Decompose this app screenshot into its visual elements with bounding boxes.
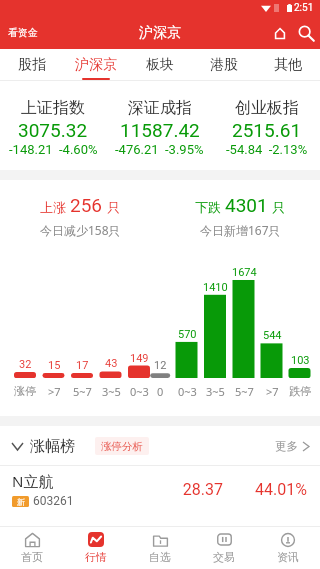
staticText: 1410 — [203, 281, 228, 294]
staticText: -476.21 -3.95% — [115, 142, 204, 157]
staticText: 今日减少158只 — [40, 222, 121, 238]
staticText: N立航 — [12, 471, 54, 491]
staticText: -54.84 -2.13% — [226, 142, 308, 157]
staticText: 跌停 — [289, 384, 311, 398]
button[interactable]: 交易 — [192, 527, 256, 569]
staticText: 3~5 — [206, 384, 225, 399]
button[interactable]: 行情 — [64, 527, 128, 569]
staticText: 0~3 — [178, 384, 197, 399]
staticText: 只 — [107, 199, 120, 215]
button[interactable]: 股指 — [0, 49, 64, 81]
staticText: 沪深京 — [75, 56, 117, 74]
button[interactable]: 其他 — [256, 49, 320, 81]
button[interactable]: Search — [292, 19, 320, 47]
staticText: 28.37 — [153, 480, 223, 499]
button[interactable]: 创业板指 — [213, 98, 320, 157]
staticText: 板块 — [146, 56, 174, 74]
button[interactable]: 更多 — [275, 439, 309, 453]
staticText: -148.21 -4.60% — [9, 142, 98, 157]
staticText: 深证成指 — [128, 98, 192, 118]
staticText: 更多 — [275, 439, 298, 453]
staticText: 港股 — [210, 56, 238, 74]
button[interactable]: N立航 — [0, 466, 320, 513]
staticText: 43 — [105, 357, 118, 370]
staticText: 5~7 — [73, 384, 92, 399]
staticText: 涨幅榜 — [30, 437, 75, 456]
staticText: 下跌 — [195, 199, 221, 215]
button[interactable]: 资讯 — [256, 527, 320, 569]
staticText: 149 — [130, 352, 149, 365]
staticText: 看资金 — [8, 26, 38, 39]
button[interactable]: 上涨 — [0, 194, 160, 238]
button[interactable]: 首页 — [0, 527, 64, 569]
staticText: 0~3 — [130, 384, 149, 399]
staticText: 32 — [19, 358, 32, 371]
staticText: 上涨 — [40, 199, 66, 215]
button[interactable]: 涨停分析 — [95, 437, 149, 455]
staticText: >7 — [266, 384, 279, 399]
staticText: 今日新增167只 — [200, 222, 281, 238]
staticText: 只 — [272, 199, 285, 215]
staticText: 自选 — [149, 550, 171, 564]
button[interactable]: 深证成指 — [106, 98, 213, 157]
button[interactable]: 沪深京 — [64, 49, 128, 81]
staticText: 沪深京 — [139, 24, 181, 42]
staticText: 3075.32 — [18, 119, 88, 141]
staticText: 3~5 — [102, 384, 121, 399]
staticText: 603261 — [33, 494, 74, 508]
staticText: 2:51 — [294, 2, 314, 14]
staticText: 12 — [154, 359, 167, 372]
staticText: 股指 — [18, 56, 46, 74]
button[interactable]: 板块 — [128, 49, 192, 81]
staticText: 544 — [263, 329, 282, 342]
staticText: 1674 — [232, 266, 257, 279]
staticText: 交易 — [213, 550, 235, 564]
staticText: 15 — [48, 359, 61, 372]
button[interactable]: 上证指数 — [0, 98, 106, 157]
staticText: 4301 — [225, 194, 268, 216]
staticText: 创业板指 — [235, 98, 299, 118]
button[interactable]: 下跌 — [160, 194, 320, 238]
staticText: 上证指数 — [21, 98, 85, 118]
button[interactable]: Home — [268, 21, 292, 45]
button[interactable]: 港股 — [192, 49, 256, 81]
button[interactable]: 自选 — [128, 527, 192, 569]
staticText: 5~7 — [235, 384, 254, 399]
staticText: 涨停 — [14, 384, 36, 398]
button[interactable]: 看资金 — [0, 16, 44, 49]
staticText: 11587.42 — [120, 119, 200, 141]
staticText: 256 — [70, 194, 103, 216]
staticText: 570 — [178, 328, 197, 341]
staticText: 其他 — [274, 56, 302, 74]
staticText: 103 — [291, 354, 310, 367]
staticText: 资讯 — [277, 550, 299, 564]
staticText: 17 — [76, 359, 89, 372]
staticText: 首页 — [21, 550, 43, 564]
staticText: 涨停分析 — [101, 440, 143, 453]
staticText: 行情 — [85, 550, 107, 564]
staticText: 44.01% — [245, 480, 307, 499]
staticText: 0 — [157, 384, 164, 399]
staticText: >7 — [48, 384, 61, 399]
staticText: 新 — [17, 497, 25, 507]
staticText: 2515.61 — [232, 119, 302, 141]
